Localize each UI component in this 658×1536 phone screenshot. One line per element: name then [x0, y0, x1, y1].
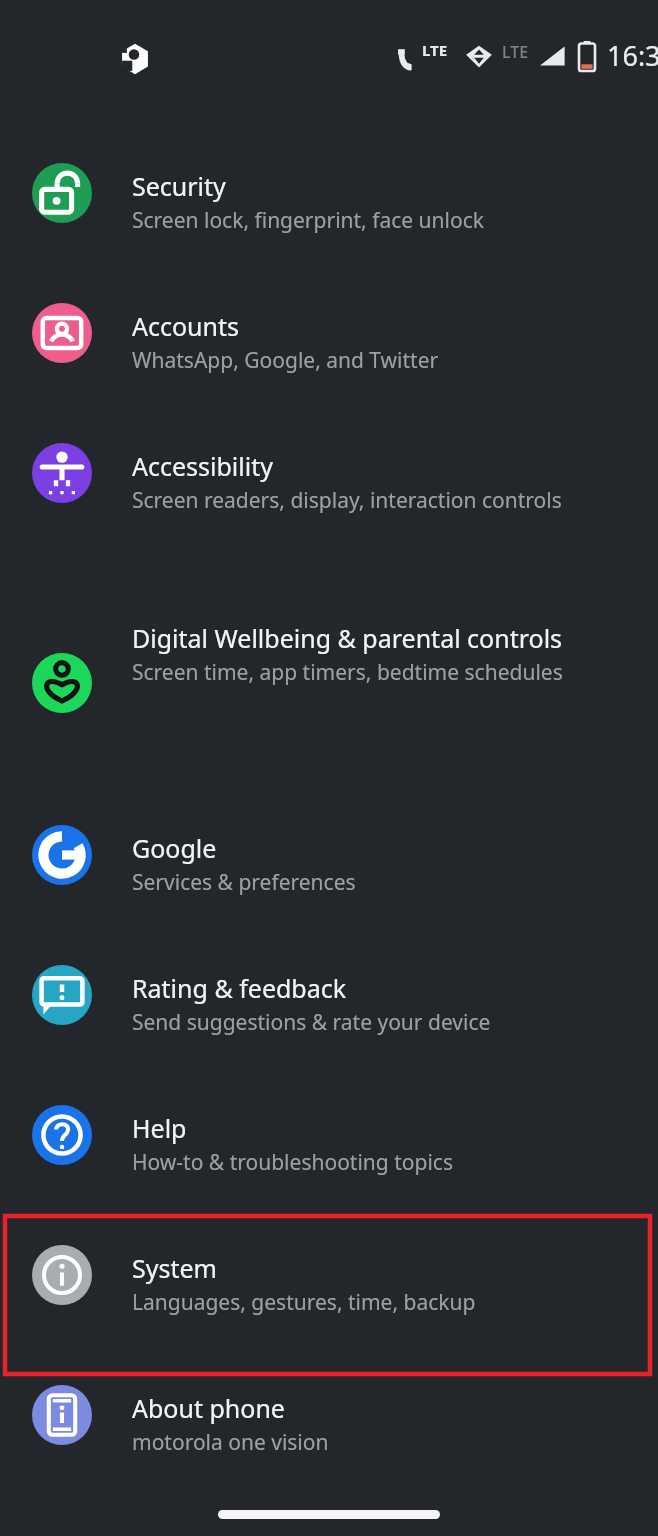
staticText: Send suggestions & rate your device: [132, 1008, 491, 1037]
staticText: Help: [132, 1111, 187, 1145]
button[interactable]: Google: [0, 817, 658, 957]
staticText: Services & preferences: [132, 868, 356, 897]
staticText: LTE: [422, 40, 448, 60]
button[interactable]: Accounts: [0, 295, 658, 435]
staticText: WhatsApp, Google, and Twitter: [132, 346, 439, 375]
staticText: Languages, gestures, time, backup: [132, 1288, 476, 1317]
staticText: Accounts: [132, 309, 240, 343]
button[interactable]: System: [0, 1237, 658, 1377]
staticText: System: [132, 1251, 217, 1285]
staticText: 16:37: [607, 37, 658, 74]
staticText: motorola one vision: [132, 1428, 329, 1457]
button[interactable]: Security: [0, 155, 658, 295]
staticText: Screen time, app timers, bedtime schedul…: [132, 658, 563, 687]
staticText: Google: [132, 831, 217, 865]
staticText: Security: [132, 169, 226, 203]
button[interactable]: Digital Wellbeing & parental controls: [0, 607, 658, 817]
button[interactable]: Rating & feedback: [0, 957, 658, 1097]
staticText: LTE: [502, 41, 529, 63]
button[interactable]: Help: [0, 1097, 658, 1237]
button[interactable]: About phone: [0, 1377, 658, 1517]
staticText: Screen readers, display, interaction con…: [132, 486, 562, 515]
staticText: Accessibility: [132, 449, 273, 483]
staticText: Rating & feedback: [132, 971, 347, 1005]
button[interactable]: Accessibility: [0, 435, 658, 607]
staticText: How-to & troubleshooting topics: [132, 1148, 453, 1177]
staticText: About phone: [132, 1391, 285, 1425]
staticText: Screen lock, fingerprint, face unlock: [132, 206, 484, 235]
staticText: Digital Wellbeing & parental controls: [132, 621, 563, 655]
